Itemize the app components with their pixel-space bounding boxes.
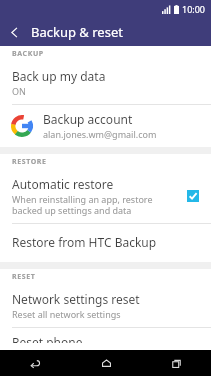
button[interactable]: Network settings reset [0,285,211,327]
button[interactable]: Automatic restore checkbox [184,187,202,205]
button[interactable]: Recent apps [141,350,211,376]
button[interactable]: Back up my data [0,62,211,104]
button[interactable]: Back [0,18,28,46]
staticText: Backup & reset [31,23,123,41]
button[interactable]: Back [0,350,71,376]
staticText: Reset phone [12,334,83,343]
staticText: 10:00 [182,3,206,15]
button[interactable]: Restore from HTC Backup [0,224,211,262]
staticText: Reset all network settings [12,308,121,320]
staticText: alan.jones.wm@gmail.com [43,128,157,140]
staticText: ON [12,85,26,97]
staticText: RESET [12,272,36,282]
button[interactable]: Backup account [0,105,211,147]
staticText: Back up my data [12,68,106,84]
button[interactable]: Reset phone [0,328,211,350]
staticText: Backup account [43,111,133,127]
staticText: Network settings reset [12,291,140,307]
staticText: BACKUP [12,49,44,59]
staticText: RESTORE [12,157,47,167]
button[interactable]: Home [71,350,141,376]
staticText: Restore from HTC Backup [12,234,157,250]
button[interactable]: Automatic restore [0,170,211,223]
staticText: Automatic restore [12,176,114,192]
staticText: When reinstalling an app, restore backed… [12,193,178,216]
